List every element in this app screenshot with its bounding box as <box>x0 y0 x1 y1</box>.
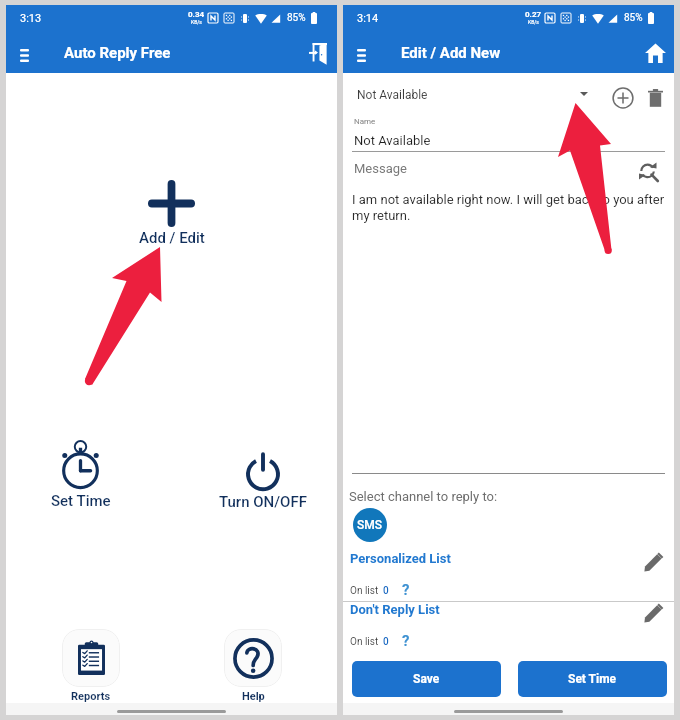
button[interactable]: Find and replace <box>635 158 661 184</box>
staticText: SMS <box>357 518 383 532</box>
staticText: Set Time <box>51 492 111 510</box>
staticText: Don't Reply List <box>350 602 440 617</box>
staticText: 3:14 <box>357 12 379 25</box>
staticText: Add / Edit <box>139 229 205 247</box>
staticText: KB/s <box>528 19 539 25</box>
staticText: Not Available <box>354 133 431 148</box>
staticText: 0 <box>383 636 389 648</box>
button[interactable]: Turn ON/OFF <box>196 451 329 511</box>
staticText: Turn ON/OFF <box>219 493 307 511</box>
staticText: 85% <box>287 12 306 24</box>
staticText: On list <box>350 636 379 648</box>
button[interactable]: Not Available <box>357 88 428 102</box>
button[interactable] <box>343 598 674 654</box>
button[interactable]: Set Time <box>518 661 667 697</box>
button[interactable]: Save <box>352 661 501 697</box>
staticText: ? <box>402 581 410 599</box>
staticText: On list <box>350 585 379 597</box>
staticText: 0 <box>383 585 389 597</box>
staticText: Help <box>242 690 265 703</box>
staticText: Name <box>354 117 376 126</box>
staticText: Select channel to reply to: <box>349 489 498 504</box>
staticText: Reports <box>71 690 111 703</box>
staticText: Personalized List <box>350 551 451 566</box>
button[interactable]: Edit <box>640 599 668 627</box>
staticText: KB/s <box>191 19 202 25</box>
staticText: 0.34 <box>188 10 205 19</box>
button[interactable]: Add / Edit <box>118 180 225 247</box>
staticText: Auto Reply Free <box>64 44 171 62</box>
button[interactable]: Delete <box>641 84 669 112</box>
button[interactable]: SMS <box>353 508 387 542</box>
staticText: Message <box>354 161 407 176</box>
button[interactable]: Add <box>609 84 637 112</box>
button[interactable]: Edit <box>640 548 668 576</box>
button[interactable]: Help <box>224 629 282 703</box>
button[interactable]: Expand <box>572 82 596 106</box>
staticText: 0.27 <box>525 10 542 19</box>
staticText: I am not available right now. I will get… <box>352 192 665 223</box>
button[interactable]: Set Time <box>36 440 125 510</box>
button[interactable]: Menu <box>345 39 377 71</box>
button[interactable]: Exit <box>303 38 333 68</box>
button[interactable]: Home <box>640 38 670 68</box>
button[interactable]: Reports <box>62 629 120 703</box>
staticText: ? <box>402 632 410 650</box>
button[interactable]: Menu <box>8 39 40 71</box>
button[interactable] <box>343 547 674 603</box>
staticText: Edit / Add New <box>401 44 501 62</box>
staticText: Save <box>413 672 440 686</box>
staticText: 85% <box>624 12 643 24</box>
staticText: Set Time <box>568 672 617 686</box>
staticText: 3:13 <box>20 12 42 25</box>
